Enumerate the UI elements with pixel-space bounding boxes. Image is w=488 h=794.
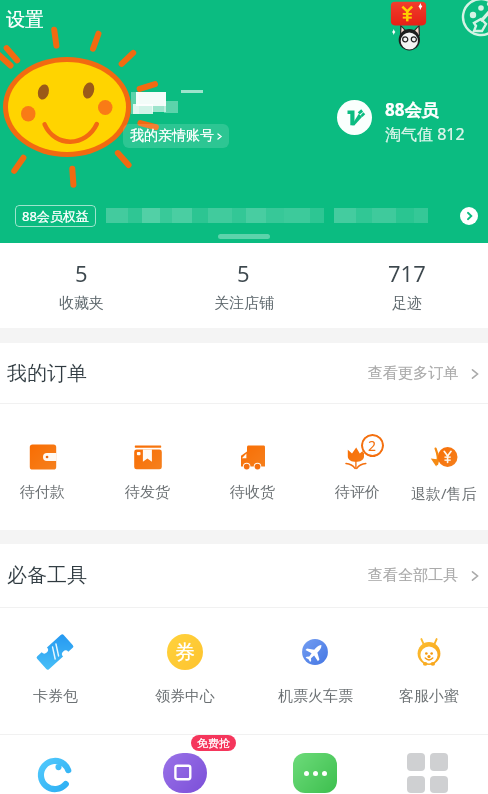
button[interactable]: 天猫红包 <box>388 0 429 41</box>
staticText: 关注店铺 <box>214 294 274 313</box>
staticText: 5 <box>75 258 88 288</box>
button[interactable]: 5 <box>0 258 162 313</box>
button[interactable]: 查看全部工具 <box>364 560 488 591</box>
button[interactable]: 芝麻信用 <box>33 753 77 793</box>
staticText: 足迹 <box>392 294 422 313</box>
staticText: 88会员权益 <box>22 207 89 225</box>
staticText: 5 <box>237 258 250 288</box>
button[interactable]: 717 <box>325 258 488 313</box>
staticText: 退款/售后 <box>411 483 477 503</box>
button[interactable]: 88会员权益 <box>0 203 488 229</box>
staticText: 待收货 <box>230 483 275 502</box>
button[interactable]: 卡券包 <box>0 608 120 706</box>
button[interactable]: 2 <box>305 404 410 502</box>
button[interactable]: 更多 <box>293 753 337 793</box>
staticText: 查看更多订单 <box>368 364 458 383</box>
staticText: 717 <box>388 258 426 288</box>
staticText: 待评价 <box>335 483 380 502</box>
button[interactable]: 券 <box>120 608 250 706</box>
button[interactable]: 待收货 <box>200 404 305 502</box>
button[interactable]: 待发货 <box>95 404 200 502</box>
staticText: 查看全部工具 <box>368 566 458 585</box>
button[interactable]: 机票火车票 <box>250 608 380 706</box>
button[interactable]: 我的亲情账号 <box>123 124 229 148</box>
staticText: 淘气值 812 <box>385 123 465 145</box>
staticText: 客服小蜜 <box>399 687 459 706</box>
button[interactable]: 查看更多订单 <box>364 358 488 389</box>
staticText: 2 <box>368 436 377 455</box>
staticText: 我的订单 <box>7 361 87 386</box>
button[interactable]: 全部应用 <box>407 753 451 793</box>
button[interactable]: 主题换肤 <box>457 0 488 41</box>
staticText: 设置 <box>6 8 44 32</box>
staticText: 免费抢 <box>197 736 230 750</box>
button[interactable]: 88会员 <box>337 100 465 147</box>
staticText: 必备工具 <box>7 563 87 588</box>
staticText: 收藏夹 <box>59 294 104 313</box>
staticText: 待付款 <box>20 483 65 502</box>
button[interactable]: 退款/售后 <box>410 404 478 503</box>
button[interactable]: 待付款 <box>0 404 95 502</box>
staticText: 机票火车票 <box>278 687 353 706</box>
staticText: 88会员 <box>385 98 439 121</box>
staticText: 我的亲情账号 <box>130 127 214 145</box>
button[interactable]: 5 <box>162 258 325 313</box>
button[interactable]: 淘宝直播 <box>163 753 207 793</box>
button[interactable]: 客服小蜜 <box>380 608 478 706</box>
staticText: 卡券包 <box>33 687 78 706</box>
button[interactable]: 设置 <box>3 5 47 35</box>
staticText: 券 <box>175 640 195 665</box>
staticText: 领券中心 <box>155 687 215 706</box>
staticText: 待发货 <box>125 483 170 502</box>
